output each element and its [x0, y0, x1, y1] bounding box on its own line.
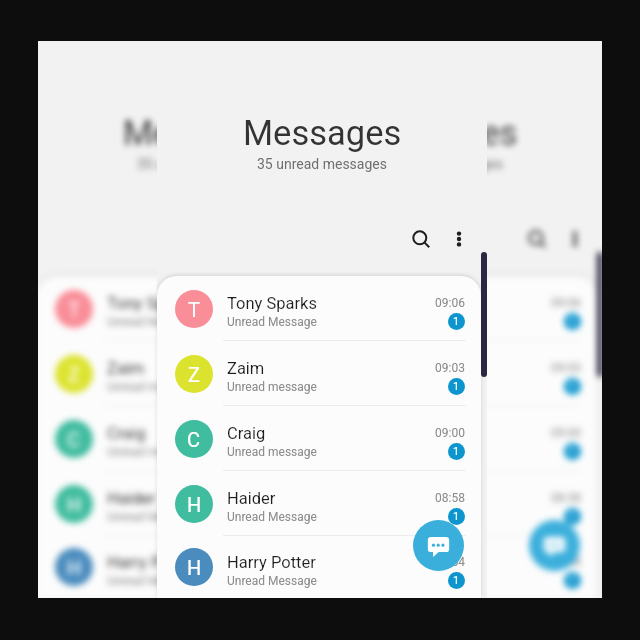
staticText: Unread Message — [227, 315, 317, 329]
staticText: 09:06 — [435, 296, 465, 310]
staticText: Zaim — [227, 359, 265, 378]
staticText: H — [303, 556, 318, 579]
staticText: Messages — [123, 113, 282, 153]
button[interactable]: Z — [273, 341, 597, 406]
button[interactable]: New message — [413, 520, 464, 571]
staticText: Harry Potter — [227, 553, 316, 572]
staticText: Haider — [227, 489, 276, 508]
staticText: 1 — [453, 574, 460, 587]
button[interactable]: C — [273, 406, 597, 471]
staticText: Unread Message — [227, 574, 317, 588]
staticText: 1 — [453, 380, 460, 393]
button[interactable]: T — [38, 276, 361, 341]
staticText: Unread Message — [107, 574, 197, 588]
staticText: C — [187, 428, 201, 451]
button[interactable]: T — [157, 276, 481, 341]
staticText: Craig — [107, 424, 146, 443]
staticText: Craig — [227, 424, 266, 443]
staticText: Tony Sparks — [107, 294, 197, 313]
button[interactable]: C — [157, 406, 481, 471]
staticText: H — [187, 493, 202, 516]
staticText: 09:06 — [551, 296, 581, 310]
button[interactable]: H — [38, 536, 361, 598]
staticText: 09:03 — [551, 361, 581, 375]
button[interactable]: New message — [293, 520, 344, 571]
button[interactable]: More options — [441, 221, 477, 257]
staticText: Z — [188, 363, 200, 386]
staticText: Z — [68, 363, 80, 386]
button[interactable]: Search — [401, 219, 441, 259]
staticText: 08:54 — [315, 555, 345, 569]
staticText: H — [67, 493, 82, 516]
staticText: 1 — [569, 510, 576, 523]
staticText: 09:00 — [551, 426, 581, 440]
staticText: Unread Message — [227, 510, 317, 524]
staticText: H — [303, 493, 318, 516]
staticText: 1 — [569, 380, 576, 393]
button[interactable]: H — [273, 471, 597, 536]
staticText: Unread Message — [343, 510, 433, 524]
staticText: T — [188, 298, 200, 321]
button[interactable]: H — [157, 536, 481, 598]
staticText: Unread message — [227, 380, 317, 394]
staticText: Haider — [107, 489, 156, 508]
staticText: 35 unread messages — [257, 156, 387, 172]
button[interactable]: T — [273, 276, 597, 341]
staticText: 1 — [569, 445, 576, 458]
staticText: 09:06 — [315, 296, 345, 310]
staticText: Tony Sparks — [227, 294, 317, 313]
staticText: 35 unread messages — [373, 156, 503, 172]
staticText: 08:58 — [435, 491, 465, 505]
button[interactable]: H — [157, 471, 481, 536]
staticText: H — [67, 556, 82, 579]
button[interactable]: H — [273, 536, 597, 598]
staticText: 1 — [453, 510, 460, 523]
staticText: 09:03 — [435, 361, 465, 375]
button[interactable]: Z — [157, 341, 481, 406]
button[interactable]: H — [38, 471, 361, 536]
staticText: Unread message — [107, 380, 197, 394]
staticText: Z — [304, 363, 316, 386]
staticText: C — [303, 428, 317, 451]
staticText: 08:54 — [435, 555, 465, 569]
button[interactable]: New message — [529, 520, 580, 571]
staticText: 1 — [453, 445, 460, 458]
staticText: T — [304, 298, 316, 321]
button[interactable]: Search — [517, 219, 557, 259]
staticText: Unread Message — [107, 315, 197, 329]
staticText: Unread message — [227, 445, 317, 459]
button[interactable]: Z — [38, 341, 361, 406]
staticText: 08:58 — [551, 491, 581, 505]
staticText: Unread message — [107, 445, 197, 459]
staticText: 35 unread messages — [137, 156, 267, 172]
staticText: 1 — [569, 315, 576, 328]
staticText: Harry Potter — [107, 553, 196, 572]
staticText: 09:00 — [435, 426, 465, 440]
staticText: 08:54 — [551, 555, 581, 569]
staticText: Harry Potter — [343, 553, 432, 572]
staticText: Unread Message — [107, 510, 197, 524]
button[interactable]: C — [38, 406, 361, 471]
staticText: 1 — [453, 315, 460, 328]
staticText: Messages — [359, 113, 518, 153]
staticText: Zaim — [107, 359, 145, 378]
button[interactable]: More options — [557, 221, 593, 257]
